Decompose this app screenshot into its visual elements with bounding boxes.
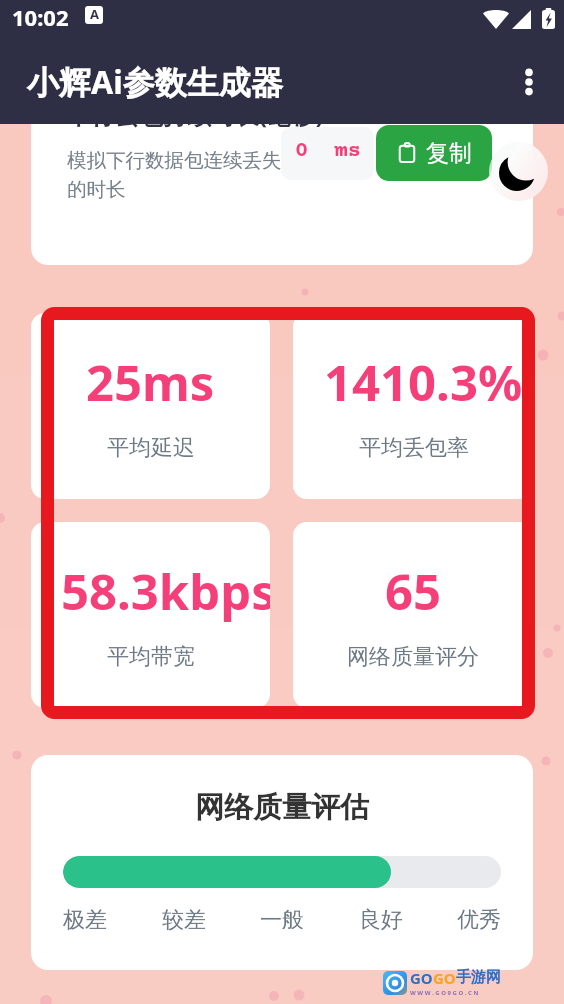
staticText: 平均丢包率 [359, 434, 469, 462]
staticText: 极差 [63, 906, 107, 934]
staticText: 25ms [86, 349, 215, 416]
staticText: 优秀 [457, 906, 501, 934]
staticText: 10:02 [12, 2, 69, 32]
staticText: 1410.3% [324, 349, 523, 416]
staticText: W W W . G O 9 G O . C N [410, 989, 479, 997]
button[interactable]: 0 ms [281, 127, 374, 180]
staticText: A [90, 6, 99, 23]
staticText: 0 ms [295, 139, 361, 164]
staticText: 平均带宽 [107, 643, 195, 671]
button[interactable]: 65 [293, 522, 533, 708]
staticText: 一般 [260, 906, 304, 934]
staticText: 下行丢包持续时长(毫秒) [67, 124, 324, 131]
staticText: 手游网 [456, 968, 501, 987]
button[interactable]: More options [505, 61, 553, 109]
button[interactable]: Toggle dark mode [489, 142, 548, 201]
button[interactable]: 1410.3% [293, 313, 533, 499]
button[interactable]: 58.3kbps [31, 522, 270, 708]
staticText: GO [433, 968, 456, 988]
staticText: 良好 [359, 906, 403, 934]
staticText: GO [410, 968, 433, 988]
staticText: 网络质量评估 [31, 789, 533, 826]
staticText: 网络质量评分 [347, 643, 479, 671]
staticText: 较差 [162, 906, 206, 934]
staticText: 小辉Ai参数生成器 [27, 60, 283, 104]
staticText: 复制 [426, 139, 472, 168]
staticText: 58.3kbps [61, 558, 270, 625]
button[interactable]: 复制 [376, 125, 492, 181]
staticText: 模拟下行数据包连续丢失 的时长 [67, 148, 282, 202]
button[interactable]: 25ms [31, 313, 270, 499]
staticText: 平均延迟 [107, 434, 195, 462]
staticText: 65 [385, 558, 442, 625]
